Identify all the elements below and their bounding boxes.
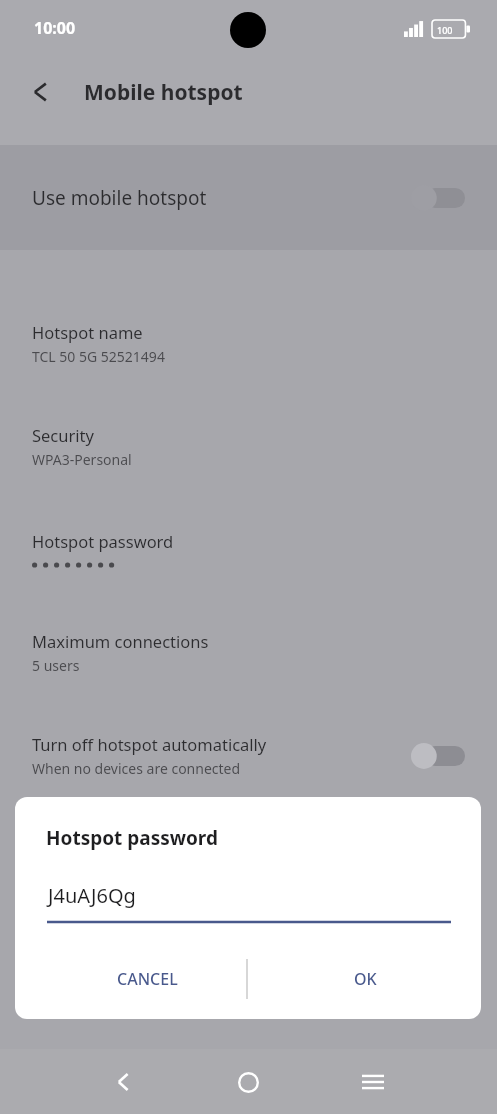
staticText: Hotspot password xyxy=(32,530,174,552)
staticText: J4uAJ6Qg xyxy=(48,882,136,909)
button[interactable]: Toggle xyxy=(411,742,465,770)
staticText: Turn off hotspot automatically xyxy=(32,733,267,755)
button[interactable]: J4uAJ6Qg xyxy=(47,882,451,924)
staticText: Use mobile hotspot xyxy=(32,185,411,211)
staticText: won't appear in the list of available Wi… xyxy=(32,825,316,845)
button[interactable]: Recent apps xyxy=(350,1059,396,1105)
button[interactable]: Home xyxy=(225,1059,271,1105)
staticText: Hotspot password xyxy=(46,825,218,851)
staticText: WPA3-Personal xyxy=(32,450,132,469)
button[interactable]: Hotspot name xyxy=(0,292,497,395)
button[interactable]: OK xyxy=(279,955,451,1003)
staticText: TCL 50 5G 52521494 xyxy=(32,347,165,366)
staticText: 10:00 xyxy=(34,17,76,39)
staticText: 100 xyxy=(437,24,453,36)
staticText: When no devices are connected xyxy=(32,759,241,778)
staticText: CANCEL xyxy=(117,968,178,990)
button[interactable]: Use mobile hotspot xyxy=(0,145,497,250)
staticText: 5 users xyxy=(32,656,80,675)
staticText: networks. xyxy=(32,845,102,865)
staticText: Security xyxy=(32,424,94,446)
staticText: Mobile hotspot xyxy=(84,78,243,107)
button[interactable]: CANCEL xyxy=(61,955,233,1003)
button[interactable]: Hotspot password xyxy=(0,498,497,601)
button[interactable]: Security xyxy=(0,395,497,498)
staticText: Hotspot name xyxy=(32,321,143,343)
button[interactable]: Maximum connections xyxy=(0,601,497,704)
button[interactable]: Back xyxy=(101,1059,147,1105)
button[interactable]: Back xyxy=(18,69,64,115)
staticText: Maximum connections xyxy=(32,630,209,652)
staticText: OK xyxy=(354,968,377,990)
button[interactable]: Toggle xyxy=(411,184,465,212)
button[interactable]: Turn off hotspot automatically xyxy=(0,704,497,807)
